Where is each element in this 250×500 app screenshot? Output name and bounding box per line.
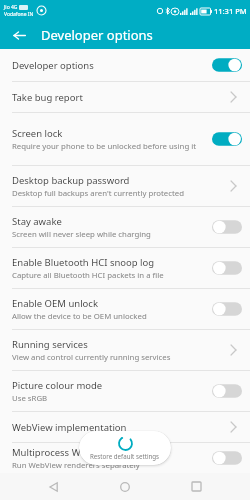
staticText: Stay awake xyxy=(12,215,62,228)
staticText: Restore default settings xyxy=(90,452,160,460)
staticText: Picture colour mode xyxy=(12,379,103,392)
staticText: Enable Bluetooth HCI snoop log xyxy=(12,256,155,269)
staticText: Desktop full backups aren't currently pr… xyxy=(12,188,184,199)
staticText: Screen will never sleep while charging xyxy=(12,229,151,240)
staticText: Require your phone to be unlocked before… xyxy=(12,141,197,152)
staticText: Use sRGB xyxy=(12,393,48,404)
staticText: 11:31 PM xyxy=(214,6,247,16)
button[interactable] xyxy=(212,380,242,402)
button[interactable] xyxy=(212,128,242,150)
button[interactable]: Back xyxy=(9,25,29,45)
staticText: Developer options xyxy=(12,59,94,72)
button[interactable]: Open xyxy=(224,175,242,197)
button[interactable]: Take bug report xyxy=(0,82,250,112)
staticText: Jio 4G xyxy=(4,4,18,11)
button[interactable] xyxy=(212,216,242,238)
staticText: View and control currently running servi… xyxy=(12,352,171,363)
staticText: Run WebView renderers separately xyxy=(12,460,140,471)
button[interactable]: Open xyxy=(224,86,242,108)
button[interactable]: Open xyxy=(224,339,242,361)
button[interactable]: Recent apps xyxy=(179,473,213,500)
staticText: Vodafone IN xyxy=(4,11,34,18)
staticText: Running services xyxy=(12,338,88,351)
staticText: WebView implementation xyxy=(12,421,127,434)
button[interactable]: WebView implementation xyxy=(0,412,250,442)
button[interactable] xyxy=(212,298,242,320)
staticText: Screen lock xyxy=(12,127,63,140)
button[interactable]: Home xyxy=(108,473,142,500)
button[interactable]: Enable OEM unlock xyxy=(0,289,250,329)
button[interactable]: Back xyxy=(37,473,71,500)
staticText: Enable OEM unlock xyxy=(12,297,98,310)
button[interactable] xyxy=(212,257,242,279)
staticText: Allow the device to be OEM unlocked xyxy=(12,311,147,322)
button[interactable]: Running services xyxy=(0,330,250,370)
staticText: Take bug report xyxy=(12,91,83,104)
button[interactable] xyxy=(212,54,242,76)
button[interactable] xyxy=(212,447,242,469)
staticText: Developer options xyxy=(41,26,153,44)
staticText: Multiprocess WebView xyxy=(12,446,113,459)
staticText: Capture all Bluetooth HCI packets in a f… xyxy=(12,270,164,281)
button[interactable]: Picture colour mode xyxy=(0,371,250,411)
staticText: Desktop backup password xyxy=(12,174,130,187)
button[interactable]: Stay awake xyxy=(0,207,250,247)
button[interactable]: Open xyxy=(224,416,242,438)
button[interactable]: Screen lock xyxy=(0,113,250,165)
button[interactable]: Desktop backup password xyxy=(0,166,250,206)
button[interactable]: Developer options xyxy=(0,49,250,81)
button[interactable]: Enable Bluetooth HCI snoop log xyxy=(0,248,250,288)
button[interactable]: Multiprocess WebView xyxy=(0,443,250,473)
